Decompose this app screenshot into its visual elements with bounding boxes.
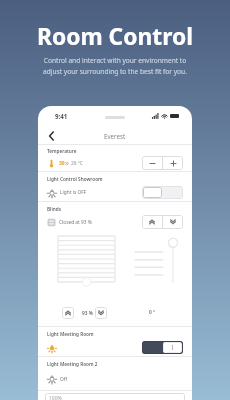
button[interactable]: Close blinds <box>163 215 183 229</box>
button[interactable]: Open blinds <box>142 215 162 229</box>
staticText: 93 % <box>82 310 93 317</box>
staticText: Light is OFF <box>60 189 87 196</box>
button[interactable]: Back <box>45 130 57 142</box>
button[interactable]: Turn light off <box>142 341 183 354</box>
staticText: Off <box>60 376 68 383</box>
staticText: 0 ° <box>149 309 156 316</box>
staticText: Light Meeting Room <box>47 331 94 337</box>
staticText: Everest <box>104 132 126 140</box>
staticText: 30 <box>59 160 65 167</box>
staticText: Temperature <box>47 148 77 154</box>
staticText: Blinds <box>47 206 61 212</box>
staticText: Closed at 93 % <box>59 219 92 226</box>
button[interactable]: Raise blinds <box>62 307 74 319</box>
button[interactable]: Turn light on <box>142 186 183 199</box>
staticText: 9:41 <box>55 112 68 120</box>
button[interactable]: Decrease temperature <box>142 156 162 170</box>
button[interactable]: Lower blinds <box>95 307 107 319</box>
staticText: Light Meeting Room 2 <box>47 361 98 367</box>
staticText: Light Control Showroom <box>47 176 103 182</box>
staticText: Control and interact with your environme… <box>0 56 230 65</box>
staticText: Room Control <box>0 21 230 52</box>
staticText: adjust your surrounding to the best fit … <box>0 67 230 76</box>
button[interactable]: Increase temperature <box>163 156 183 170</box>
staticText: 100% <box>49 395 62 400</box>
staticText: 26 °C <box>71 160 83 167</box>
